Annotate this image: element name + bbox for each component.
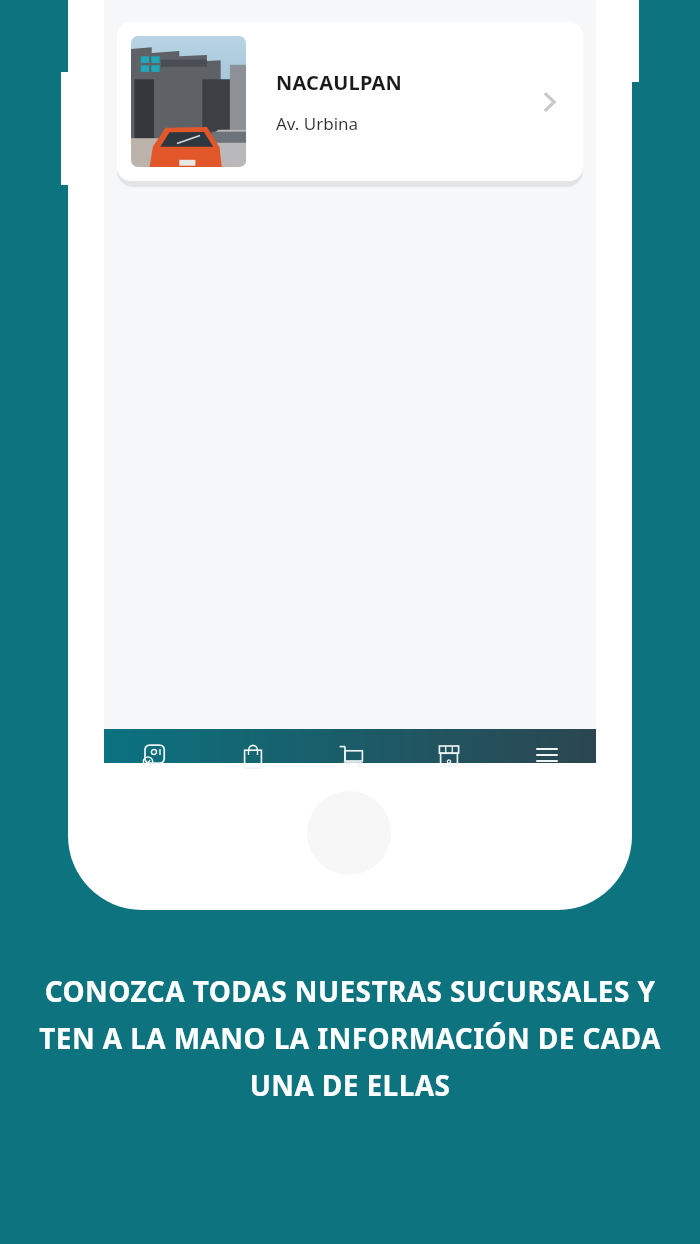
button[interactable]: Carrito xyxy=(302,729,400,763)
button[interactable]: Ver sucursal xyxy=(529,82,569,122)
button[interactable]: Sucursales xyxy=(400,729,498,763)
button[interactable]: Bolsa xyxy=(203,729,302,763)
staticText: Av. Urbina xyxy=(276,112,359,135)
button[interactable]: NACAULPAN xyxy=(117,22,583,181)
staticText: CONOZCA TODAS NUESTRAS SUCURSALES Y TEN … xyxy=(24,972,676,1104)
button[interactable]: Menú xyxy=(498,729,596,763)
button[interactable]: Etiquetas xyxy=(104,729,203,763)
staticText: NACAULPAN xyxy=(276,69,402,96)
